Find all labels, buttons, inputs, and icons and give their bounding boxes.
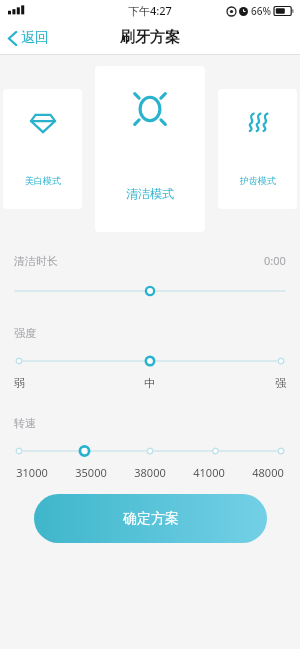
- staticText: 刷牙方案: [120, 28, 180, 47]
- staticText: 美白模式: [25, 175, 61, 186]
- staticText: 确定方案: [123, 510, 179, 528]
- staticText: 66%: [251, 4, 271, 18]
- staticText: 38000: [123, 465, 177, 480]
- button[interactable]: [0, 442, 300, 460]
- staticText: 0:00: [264, 253, 286, 268]
- button[interactable]: [0, 282, 300, 300]
- staticText: 41000: [182, 465, 236, 480]
- staticText: 返回: [21, 29, 49, 47]
- staticText: 48000: [241, 465, 295, 480]
- staticText: 强: [275, 376, 286, 390]
- button[interactable]: 清洁模式: [95, 66, 205, 232]
- button[interactable]: 护齿模式: [218, 89, 297, 209]
- staticText: 清洁模式: [126, 186, 174, 201]
- staticText: 下午4:27: [128, 3, 172, 18]
- staticText: 中: [144, 376, 155, 390]
- staticText: 护齿模式: [240, 175, 276, 186]
- button[interactable]: 返回: [0, 25, 59, 51]
- staticText: 31000: [5, 465, 59, 480]
- button[interactable]: [0, 352, 300, 370]
- staticText: 清洁时长: [14, 254, 58, 268]
- button[interactable]: 美白模式: [3, 89, 82, 209]
- staticText: 转速: [14, 416, 36, 430]
- staticText: 弱: [14, 376, 25, 390]
- staticText: 强度: [14, 326, 36, 340]
- button[interactable]: 确定方案: [34, 494, 267, 543]
- staticText: 35000: [64, 465, 118, 480]
